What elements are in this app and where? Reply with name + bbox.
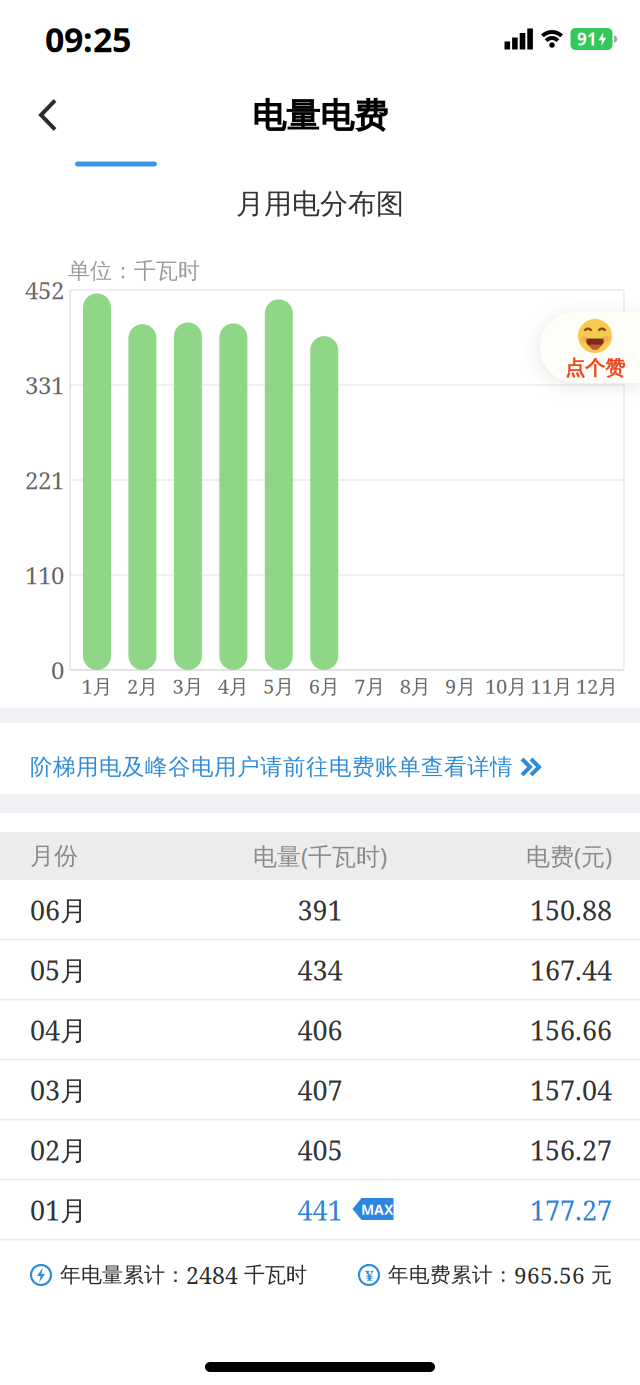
staticText: 156.27 <box>530 1132 612 1168</box>
staticText: 04月 <box>30 1012 87 1048</box>
staticText: 2月 <box>127 672 158 700</box>
staticText: 965.56 <box>514 1260 585 1290</box>
staticText: 2484 <box>186 1259 238 1291</box>
button[interactable]: Back <box>26 93 70 137</box>
staticText: 09:25 <box>45 16 131 62</box>
staticText: 9月 <box>445 672 476 700</box>
staticText: 91 <box>577 27 597 51</box>
staticText: 452 <box>25 274 64 306</box>
staticText: 阶梯用电及峰谷电用户请前往电费账单查看详情 <box>30 753 513 781</box>
staticText: 221 <box>25 464 64 496</box>
staticText: 167.44 <box>530 952 612 988</box>
staticText: 年电费累计： <box>388 1262 514 1288</box>
staticText: 月用电分布图 <box>236 186 404 222</box>
staticText: 5月 <box>263 672 294 700</box>
staticText: 千瓦时 <box>238 1262 307 1288</box>
staticText: 12月 <box>576 672 618 700</box>
staticText: 6月 <box>309 672 340 700</box>
staticText: 单位：千瓦时 <box>68 257 200 285</box>
staticText: 8月 <box>400 672 431 700</box>
staticText: 391 <box>297 892 342 928</box>
staticText: 10月 <box>485 672 527 700</box>
staticText: 11月 <box>530 672 572 700</box>
button[interactable]: 电量电费 tab <box>75 161 157 166</box>
staticText: 0 <box>51 654 64 686</box>
staticText: 元 <box>585 1262 612 1288</box>
staticText: 441 <box>297 1192 342 1228</box>
staticText: 月份 <box>30 841 78 871</box>
staticText: 150.88 <box>530 892 612 928</box>
staticText: 年电量累计： <box>60 1262 186 1288</box>
staticText: 3月 <box>172 672 203 700</box>
staticText: 7月 <box>354 672 385 700</box>
staticText: 406 <box>297 1012 342 1048</box>
staticText: 4月 <box>218 672 249 700</box>
staticText: 110 <box>25 559 64 591</box>
staticText: 点个赞 <box>565 355 625 381</box>
staticText: 157.04 <box>530 1072 612 1108</box>
staticText: MAX <box>361 1200 393 1219</box>
staticText: 331 <box>25 369 64 401</box>
staticText: ¥ <box>365 1265 373 1285</box>
staticText: 405 <box>297 1132 342 1168</box>
staticText: 1月 <box>81 672 112 700</box>
staticText: 电量电费 <box>252 95 388 137</box>
staticText: 02月 <box>30 1132 87 1168</box>
staticText: 电费(元) <box>526 840 612 872</box>
staticText: 434 <box>297 952 342 988</box>
staticText: 电量(千瓦时) <box>253 840 387 872</box>
staticText: 156.66 <box>530 1012 612 1048</box>
staticText: 177.27 <box>530 1192 612 1228</box>
staticText: 05月 <box>30 952 87 988</box>
button[interactable]: 点个赞 <box>540 312 640 383</box>
staticText: 06月 <box>30 892 87 928</box>
staticText: 03月 <box>30 1072 87 1108</box>
button[interactable]: 阶梯用电及峰谷电用户请前往电费账单查看详情 <box>0 739 640 795</box>
staticText: 01月 <box>30 1192 87 1228</box>
staticText: 407 <box>297 1072 342 1108</box>
